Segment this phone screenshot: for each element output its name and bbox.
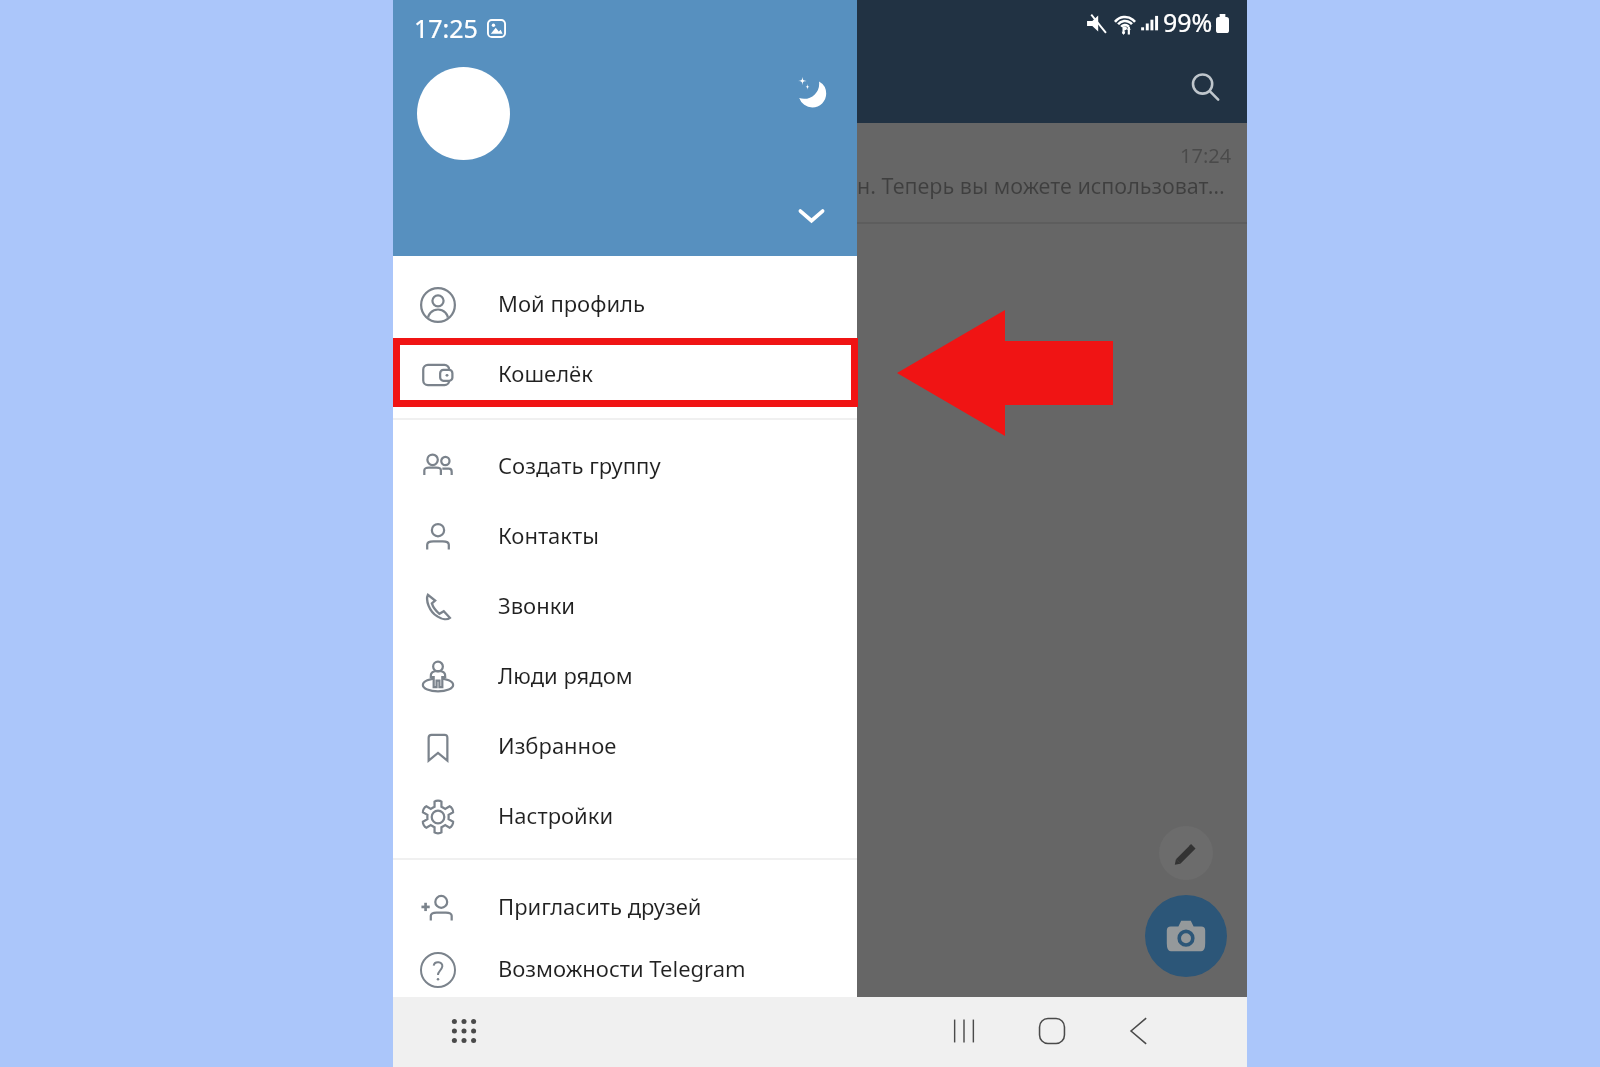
staticText: Настройки — [498, 800, 614, 830]
button[interactable]: Кошелёк — [393, 340, 857, 410]
button[interactable]: Настройки — [393, 782, 857, 852]
button[interactable]: Expand accounts — [784, 188, 838, 242]
button[interactable]: Контакты — [393, 502, 857, 572]
button[interactable]: Пригласить друзей — [393, 873, 857, 943]
staticText: 17:25 — [414, 11, 478, 45]
button[interactable]: Compose — [1159, 826, 1213, 880]
staticText: Возможности Telegram — [498, 953, 746, 983]
button[interactable]: Избранное — [393, 712, 857, 782]
staticText: Контакты — [498, 520, 599, 550]
staticText: н. Теперь вы можете использоват… — [857, 171, 1225, 200]
button[interactable]: Звонки — [393, 572, 857, 642]
button[interactable]: Apps — [436, 1003, 492, 1059]
button[interactable]: Recents — [936, 1003, 992, 1059]
button[interactable]: Night mode — [783, 63, 837, 117]
button[interactable]: Search — [1177, 59, 1233, 115]
button[interactable]: Camera — [1145, 895, 1227, 977]
staticText: Люди рядом — [498, 660, 633, 690]
button[interactable]: Home — [1024, 1003, 1080, 1059]
staticText: Создать группу — [498, 450, 661, 480]
staticText: Пригласить друзей — [498, 891, 702, 921]
button[interactable]: Люди рядом — [393, 642, 857, 712]
staticText: 17:24 — [1180, 142, 1232, 169]
staticText: 99% — [1163, 5, 1213, 39]
staticText: Кошелёк — [498, 358, 593, 388]
staticText: Избранное — [498, 730, 617, 760]
button[interactable]: Создать группу — [393, 432, 857, 502]
staticText: Звонки — [498, 590, 576, 620]
staticText: Мой профиль — [498, 288, 645, 318]
button[interactable]: Возможности Telegram — [393, 943, 857, 997]
button[interactable]: Мой профиль — [393, 270, 857, 340]
button[interactable]: Profile photo — [417, 67, 510, 160]
button[interactable]: Back — [1112, 1003, 1168, 1059]
